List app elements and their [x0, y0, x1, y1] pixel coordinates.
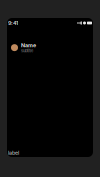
staticText: 9:41 [8, 20, 18, 26]
staticText: Name [21, 42, 36, 48]
staticText: subtitle [21, 48, 33, 53]
staticText: label [8, 149, 19, 156]
